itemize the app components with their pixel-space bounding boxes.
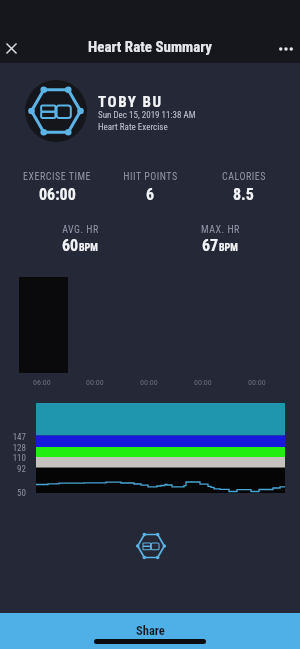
staticText: 00:00 <box>86 378 104 387</box>
button[interactable]: Share <box>0 613 300 649</box>
staticText: 147 <box>0 432 26 443</box>
staticText: HIIT POINTS <box>123 171 178 183</box>
staticText: TOBY BU <box>98 93 163 111</box>
staticText: BPM <box>79 242 98 254</box>
staticText: 00:00 <box>248 378 266 387</box>
staticText: Sun Dec 15, 2019 11:38 AM <box>98 110 196 121</box>
staticText: 06:00 <box>33 378 51 387</box>
staticText: 92 <box>0 464 26 475</box>
staticText: AVG. HR <box>62 224 99 236</box>
staticText: EXERCISE TIME <box>23 171 91 183</box>
staticText: 6 <box>146 185 155 204</box>
staticText: Heart Rate Exercise <box>98 122 168 133</box>
staticText: 00:00 <box>140 378 158 387</box>
button[interactable]: Close <box>0 28 31 68</box>
staticText: 110 <box>0 453 26 464</box>
staticText: 60 <box>62 236 79 255</box>
button[interactable]: More options <box>266 29 300 69</box>
staticText: MAX. HR <box>201 224 240 236</box>
staticText: Share <box>136 623 165 638</box>
staticText: Heart Rate Summary <box>88 38 213 56</box>
staticText: BPM <box>219 242 238 254</box>
staticText: CALORIES <box>222 171 266 183</box>
staticText: 00:00 <box>194 378 212 387</box>
staticText: 06:00 <box>39 185 76 204</box>
staticText: 128 <box>0 443 26 454</box>
staticText: 67 <box>202 236 219 255</box>
staticText: 8.5 <box>233 185 254 204</box>
staticText: 50 <box>0 488 26 499</box>
